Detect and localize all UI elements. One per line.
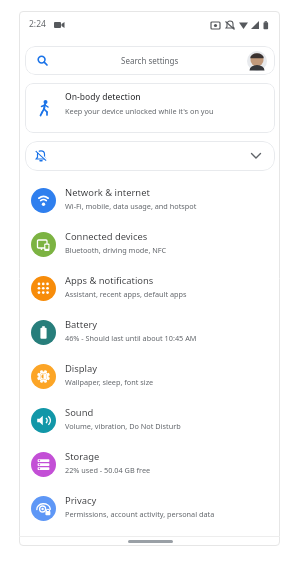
staticText: Volume, vibration, Do Not Disturb — [65, 421, 181, 431]
button[interactable]: Display — [19, 354, 280, 398]
button[interactable]: Sound — [19, 398, 280, 442]
button[interactable]: Search settings — [25, 46, 275, 75]
staticText: Privacy — [65, 494, 97, 507]
button[interactable]: Battery — [19, 310, 280, 354]
staticText: 46% - Should last until about 10:45 AM — [65, 333, 197, 343]
staticText: Storage — [65, 450, 100, 463]
staticText: Battery — [65, 318, 98, 331]
button[interactable]: Connected devices — [19, 222, 280, 266]
staticText: Permissions, account activity, personal … — [65, 509, 215, 519]
staticText: Sound — [65, 406, 94, 419]
staticText: 22% used - 50.04 GB free — [65, 465, 151, 475]
staticText: Search settings — [121, 55, 179, 66]
button[interactable]: On-body detection — [25, 83, 275, 133]
staticText: Assistant, recent apps, default apps — [65, 289, 187, 299]
staticText: Wallpaper, sleep, font size — [65, 377, 154, 387]
staticText: Connected devices — [65, 230, 148, 243]
button[interactable]: Apps & notifications — [19, 266, 280, 310]
staticText: Wi-Fi, mobile, data usage, and hotspot — [65, 201, 197, 211]
staticText: Apps & notifications — [65, 274, 154, 287]
staticText: On-body detection — [65, 91, 141, 103]
staticText: Keep your device unlocked while it's on … — [65, 106, 214, 116]
button[interactable]: Storage — [19, 442, 280, 486]
staticText: 2:24 — [29, 18, 46, 30]
button[interactable]: Network & internet — [19, 178, 280, 222]
staticText: Bluetooth, driving mode, NFC — [65, 245, 167, 255]
staticText: Network & internet — [65, 186, 150, 199]
button[interactable] — [25, 141, 275, 171]
staticText: Display — [65, 362, 98, 375]
button[interactable]: Privacy — [19, 486, 280, 530]
